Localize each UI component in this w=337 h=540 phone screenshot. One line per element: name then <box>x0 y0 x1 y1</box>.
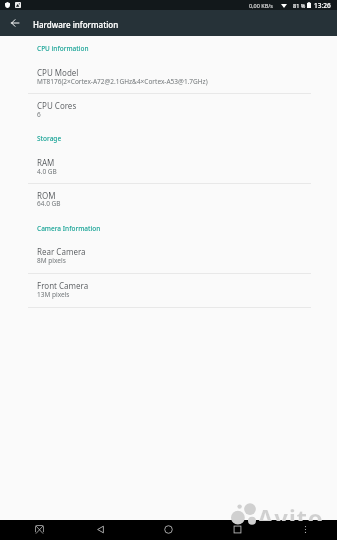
staticText: Avito <box>257 501 324 534</box>
staticText: 13M pixels <box>37 290 70 299</box>
staticText: Avito <box>257 520 324 521</box>
button[interactable]: Home <box>159 520 177 538</box>
staticText: MT8176(2×Cortex-A72@2.1GHz&4×Cortex-A53@… <box>37 77 208 86</box>
staticText: 64.0 GB <box>37 199 61 208</box>
staticText: 6 <box>37 110 41 119</box>
staticText: CPU Model <box>37 67 79 78</box>
staticText: 4.0 GB <box>37 167 57 176</box>
staticText: 13:26 <box>314 1 331 10</box>
button[interactable]: Recent apps <box>228 520 246 538</box>
staticText: 0,00 KB/s <box>249 2 274 9</box>
button[interactable]: More options <box>296 520 314 538</box>
staticText: RAM <box>37 157 55 168</box>
staticText: 8M pixels <box>37 256 66 265</box>
button[interactable]: Shrink screen <box>30 520 48 538</box>
staticText: 81 % <box>293 2 306 9</box>
staticText: ROM <box>37 190 56 201</box>
staticText: Rear Camera <box>37 246 86 257</box>
staticText: CPU Cores <box>37 100 77 111</box>
staticText: Camera Information <box>37 224 101 233</box>
staticText: Hardware information <box>33 19 119 30</box>
staticText: Storage <box>37 134 62 143</box>
staticText: CPU information <box>37 44 89 53</box>
button[interactable]: Back <box>5 13 25 33</box>
button[interactable]: Back <box>91 520 109 538</box>
staticText: Front Camera <box>37 280 89 291</box>
